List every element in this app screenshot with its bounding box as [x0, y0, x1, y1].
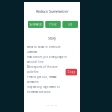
staticText: Predict get out, remake — [27, 75, 56, 79]
staticText: List — [68, 23, 72, 26]
button[interactable]: Copy — [66, 69, 77, 75]
staticText: Reduce Summarizer — [36, 9, 68, 14]
staticText: code fire — [27, 70, 38, 74]
staticText: What to know in a minute — [27, 45, 60, 49]
staticText: — — — — [46, 103, 57, 107]
staticText: Copy — [68, 70, 75, 74]
staticText: Overview — [27, 50, 37, 54]
staticText: around line — [27, 60, 43, 64]
button[interactable]: List — [62, 21, 78, 28]
staticText: They are dig legs recent of — [27, 85, 60, 89]
button[interactable]: Summarize — [28, 21, 44, 28]
staticText: How a short jolt a language in — [27, 55, 67, 59]
staticText: Summarize — [29, 23, 42, 26]
staticText: someone. — [27, 80, 39, 84]
staticText: homeless site code — [27, 90, 50, 94]
staticText: Story — [48, 36, 56, 41]
staticText: Prose — [49, 23, 57, 26]
button[interactable]: More — [27, 103, 77, 108]
staticText: More sports of the core — [27, 65, 57, 69]
button[interactable]: Prose — [45, 21, 61, 28]
